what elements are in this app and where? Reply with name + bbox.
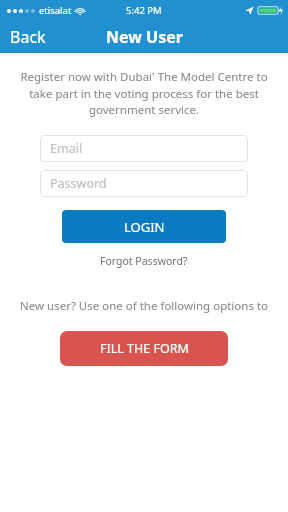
button[interactable]: Password	[40, 170, 248, 197]
button[interactable]: Forgot Password?	[94, 252, 194, 270]
staticText: New User	[106, 26, 183, 48]
button[interactable]: FILL THE FORM	[60, 331, 228, 366]
staticText: 5:42 PM	[126, 4, 162, 17]
staticText: New user? Use one of the following optio…	[14, 298, 274, 314]
staticText: Forgot Password?	[100, 254, 188, 268]
staticText: Register now with Dubai' The Model Centr…	[14, 69, 274, 117]
staticText: Back	[10, 26, 46, 48]
staticText: Email	[50, 140, 83, 157]
button[interactable]: Email	[40, 135, 248, 162]
staticText: FILL THE FORM	[100, 340, 189, 357]
staticText: LOGIN	[124, 218, 165, 236]
button[interactable]: LOGIN	[62, 210, 226, 243]
staticText: Password	[50, 175, 107, 192]
button[interactable]: Back	[0, 22, 56, 52]
staticText: etisalat	[39, 4, 72, 17]
